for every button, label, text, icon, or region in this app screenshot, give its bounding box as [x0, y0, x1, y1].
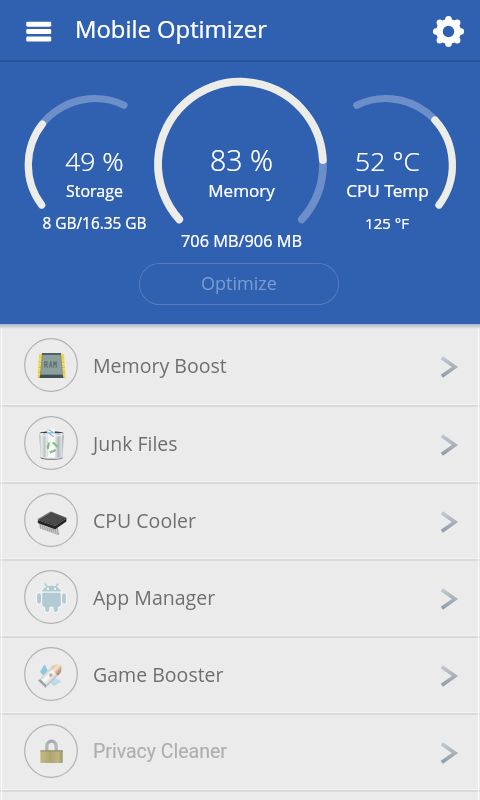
staticText: 49 % — [65, 143, 124, 179]
staticText: Memory Boost — [93, 352, 227, 379]
staticText: 706 MB/906 MB — [181, 230, 302, 252]
staticText: CPU Cooler — [93, 507, 196, 534]
staticText: 125 °F — [365, 213, 409, 233]
staticText: 83 % — [210, 141, 273, 180]
staticText: Game Booster — [93, 661, 224, 688]
staticText: Junk Files — [93, 430, 178, 457]
staticText: Optimize — [201, 271, 277, 296]
button[interactable]: Privacy Cleaner — [0, 715, 480, 789]
button[interactable]: Junk Files — [0, 407, 480, 481]
staticText: Storage — [66, 180, 123, 202]
button[interactable]: CPU Cooler — [0, 484, 480, 558]
staticText: Memory — [208, 179, 275, 202]
staticText: 8 GB/16.35 GB — [42, 213, 147, 234]
button[interactable]: App Manager — [0, 561, 480, 635]
button[interactable]: Settings — [424, 8, 471, 55]
staticText: App Manager — [93, 584, 216, 611]
button[interactable]: Menu — [16, 8, 62, 54]
button[interactable]: Memory Boost — [0, 328, 480, 404]
button[interactable]: Optimize — [139, 263, 339, 305]
staticText: Mobile Optimizer — [75, 13, 267, 45]
staticText: CPU Temp — [346, 179, 429, 202]
button[interactable]: Game Booster — [0, 638, 480, 712]
staticText: 52 °C — [355, 143, 420, 179]
staticText: Privacy Cleaner — [93, 740, 227, 763]
